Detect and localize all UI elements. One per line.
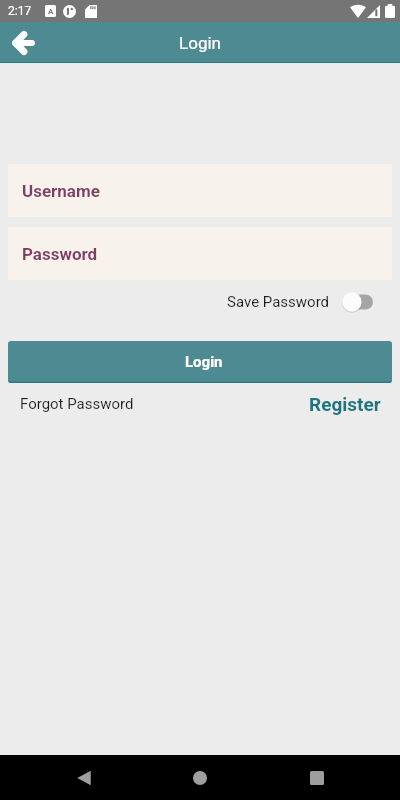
button[interactable]: Back: [69, 763, 99, 793]
button[interactable]: Home: [185, 763, 215, 793]
staticText: Save Password: [227, 293, 330, 311]
staticText: Forgot Password: [20, 395, 134, 413]
staticText: Login: [185, 353, 223, 371]
staticText: Password: [22, 244, 98, 264]
button[interactable]: Save Password toggle: [342, 292, 373, 312]
staticText: A: [48, 7, 54, 16]
staticText: Login: [179, 33, 221, 53]
button[interactable]: Login: [8, 341, 392, 383]
button[interactable]: Back: [6, 25, 42, 61]
button[interactable]: Password: [8, 227, 392, 280]
button[interactable]: Username: [8, 164, 392, 217]
button[interactable]: Forgot Password: [20, 393, 134, 415]
button[interactable]: Register: [309, 391, 381, 417]
staticText: Username: [22, 181, 100, 201]
staticText: 2:17: [8, 4, 32, 18]
button[interactable]: Recent apps: [302, 763, 332, 793]
staticText: Register: [309, 393, 381, 415]
